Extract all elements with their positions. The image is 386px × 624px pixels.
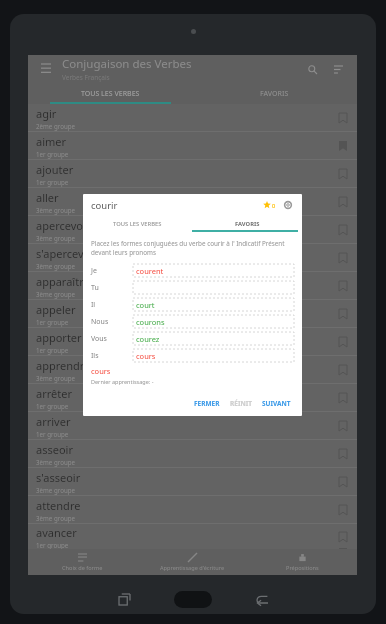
button[interactable]: avancer [28, 524, 357, 549]
button[interactable]: Prépositions [247, 549, 357, 575]
staticText: Conjugaison des Verbes [62, 56, 192, 72]
staticText: Il [91, 300, 96, 310]
button[interactable]: FERMER [189, 396, 225, 411]
staticText: courir [91, 199, 118, 212]
button[interactable]: Choix de forme [28, 549, 137, 575]
staticText: ajouter [36, 162, 74, 177]
button[interactable]: SUIVANT [257, 396, 296, 411]
staticText: 1er groupe [36, 541, 69, 549]
staticText: 1er groupe [36, 430, 69, 438]
button[interactable]: TOUS LES VERBES [28, 83, 192, 104]
staticText: 3ème groupe [36, 234, 76, 242]
staticText: apparaître [36, 274, 90, 289]
staticText: Ils [91, 351, 99, 361]
staticText: Je [91, 266, 97, 276]
button[interactable]: RÉINIT [225, 396, 257, 411]
button[interactable]: aller [28, 188, 357, 215]
button[interactable]: Menu [38, 61, 54, 77]
button[interactable]: Apprentissage d'écriture [137, 549, 247, 575]
button[interactable]: Settings [282, 199, 294, 211]
staticText: aimer [36, 134, 67, 149]
staticText: Apprentissage d'écriture [160, 564, 225, 572]
button[interactable]: apprendre [28, 356, 357, 383]
button[interactable]: appeler [28, 300, 357, 327]
staticText: Verbes Français [62, 73, 110, 82]
staticText: 3ème groupe [36, 514, 76, 522]
staticText: FAVORIS [235, 220, 260, 228]
staticText: 1er groupe [36, 318, 69, 326]
staticText: 1er groupe [36, 178, 69, 186]
button[interactable]: apercevoir [28, 216, 357, 243]
staticText: Choix de forme [62, 564, 103, 572]
staticText: appeler [36, 302, 76, 317]
staticText: cours [91, 366, 111, 376]
button[interactable]: courez [133, 332, 294, 345]
staticText: RÉINIT [230, 399, 252, 408]
staticText: Dernier apprentissage: - [91, 378, 154, 385]
staticText: 3ème groupe [36, 458, 76, 466]
button[interactable]: s'asseoir [28, 468, 357, 495]
button[interactable]: FAVORIS [192, 83, 357, 104]
staticText: avancer [36, 525, 77, 540]
staticText: Prépositions [286, 564, 319, 572]
staticText: 3ème groupe [36, 262, 76, 270]
button[interactable]: ajouter [28, 160, 357, 187]
staticText: 0 [272, 202, 276, 209]
staticText: courez [136, 334, 160, 344]
staticText: apprendre [36, 358, 91, 373]
staticText: 3ème groupe [36, 374, 76, 382]
staticText: 3ème groupe [36, 486, 76, 494]
staticText: FAVORIS [260, 89, 289, 99]
staticText: Vous [91, 334, 107, 344]
staticText: FERMER [194, 399, 220, 408]
staticText: arriver [36, 414, 71, 429]
button[interactable]: apporter [28, 328, 357, 355]
button[interactable]: courent [133, 264, 294, 277]
staticText: 3ème groupe [36, 290, 76, 298]
staticText: s'asseoir [36, 470, 81, 485]
button[interactable]: FAVORIS [192, 216, 302, 232]
button[interactable]: aimer [28, 132, 357, 159]
staticText: SUIVANT [262, 399, 291, 408]
staticText: Tu [91, 283, 99, 293]
button[interactable]: TOUS LES VERBES [83, 216, 192, 232]
staticText: courent [136, 266, 164, 276]
button[interactable]: apparaître [28, 272, 357, 299]
button[interactable]: s'apercevoir [28, 244, 357, 271]
staticText: apercevoir [36, 218, 91, 233]
button[interactable]: asseoir [28, 440, 357, 467]
staticText: s'apercevoir [36, 246, 98, 261]
button[interactable]: arriver [28, 412, 357, 439]
staticText: cours [136, 351, 156, 361]
button[interactable]: Search [303, 60, 321, 78]
staticText: Placez les formes conjuguées du verbe co… [91, 239, 294, 257]
staticText: agir [36, 106, 57, 121]
staticText: apporter [36, 330, 82, 345]
staticText: courons [136, 317, 165, 327]
staticText: TOUS LES VERBES [113, 220, 162, 228]
button[interactable]: courons [133, 315, 294, 328]
staticText: Nous [91, 317, 109, 327]
staticText: asseoir [36, 442, 73, 457]
staticText: 1er groupe [36, 402, 69, 410]
staticText: aller [36, 190, 59, 205]
button[interactable]: attendre [28, 496, 357, 523]
button[interactable]: court [133, 298, 294, 311]
staticText: 2ème groupe [36, 122, 76, 130]
staticText: attendre [36, 498, 81, 513]
staticText: TOUS LES VERBES [81, 89, 140, 99]
staticText: 1er groupe [36, 346, 69, 354]
staticText: court [136, 300, 155, 310]
staticText: arrêter [36, 386, 72, 401]
button[interactable]: Sort [329, 60, 347, 78]
button[interactable]: arrêter [28, 384, 357, 411]
button[interactable] [133, 281, 294, 294]
staticText: 3ème groupe [36, 206, 76, 214]
button[interactable]: agir [28, 104, 357, 131]
staticText: 1er groupe [36, 150, 69, 158]
button[interactable]: cours [133, 349, 294, 362]
button[interactable]: Favorites count [263, 201, 276, 209]
